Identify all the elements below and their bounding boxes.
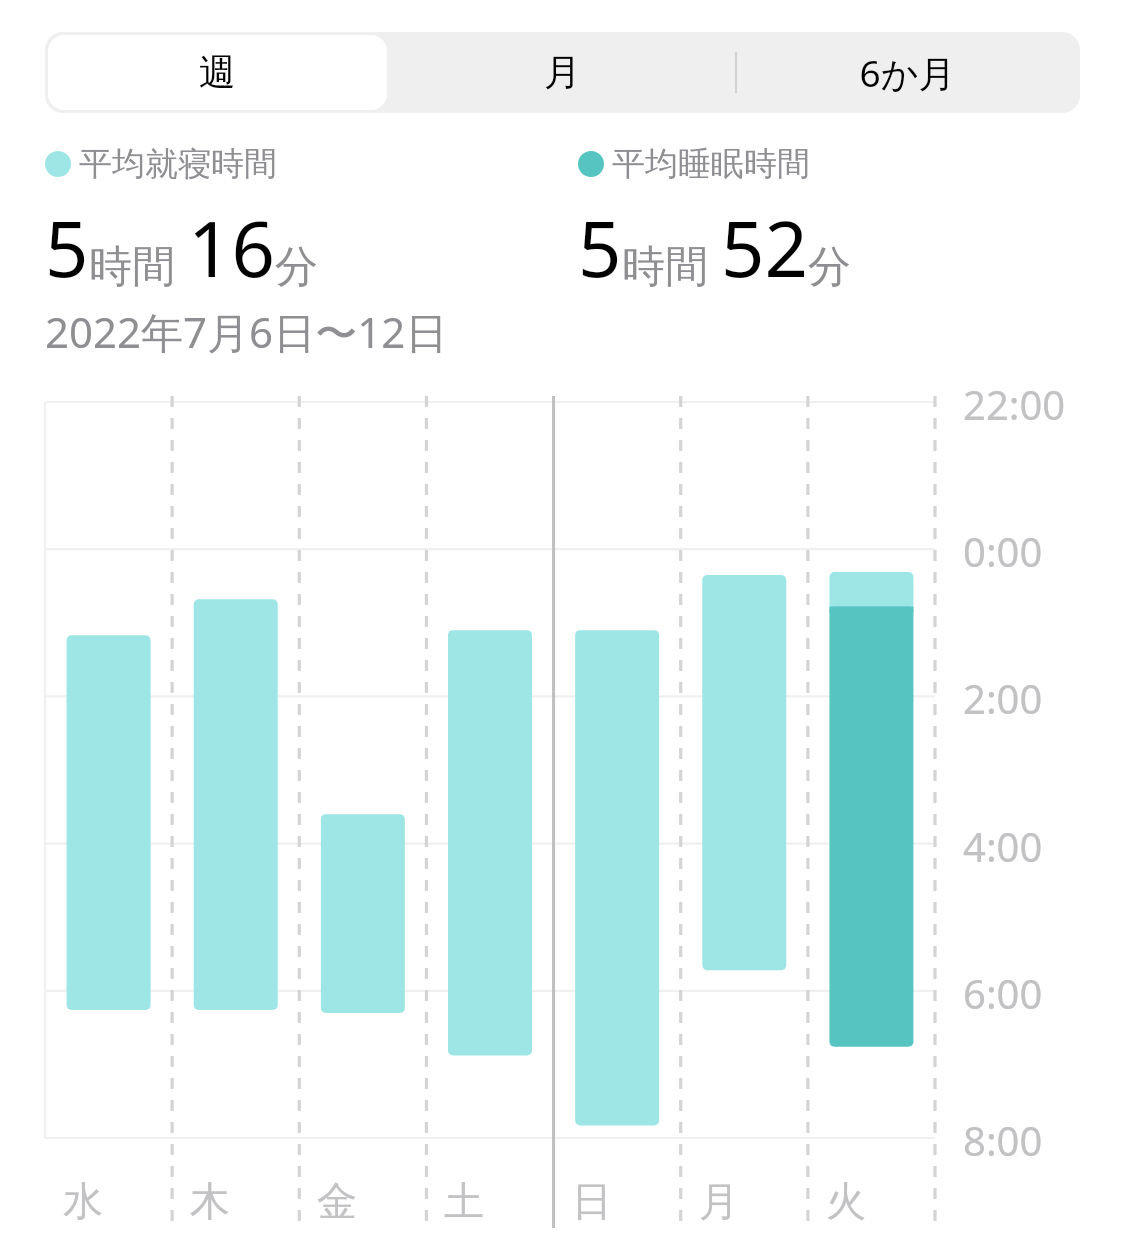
staticText: 平均就寝時間	[79, 143, 277, 185]
button[interactable]: 水曜日の睡眠データ	[45, 402, 172, 1138]
button[interactable]: 日曜日の睡眠データ	[554, 402, 681, 1138]
button[interactable]: 月曜日の睡眠データ	[681, 402, 808, 1138]
staticText: 4:00	[963, 819, 1043, 873]
staticText: 木	[190, 1176, 230, 1226]
staticText: 5	[578, 196, 622, 300]
staticText: 16	[188, 196, 275, 300]
staticText: 6か月	[859, 47, 956, 98]
staticText: 2:00	[963, 671, 1043, 725]
button[interactable]: 土曜日の睡眠データ	[426, 402, 553, 1138]
button[interactable]: 週	[45, 32, 390, 113]
button[interactable]: 火曜日の睡眠データ	[808, 402, 935, 1138]
staticText: 週	[199, 49, 236, 96]
button[interactable]: 金曜日の睡眠データ	[299, 402, 426, 1138]
staticText: 水	[63, 1176, 103, 1226]
staticText: 月	[544, 49, 581, 96]
staticText: 火	[826, 1176, 866, 1226]
staticText: 6:00	[963, 966, 1043, 1020]
staticText: 5	[45, 196, 89, 300]
staticText: 22:00	[963, 377, 1066, 431]
staticText: 52	[721, 196, 808, 300]
button[interactable]: 6か月	[735, 32, 1080, 113]
staticText: 土	[444, 1176, 484, 1226]
staticText: 金	[317, 1176, 357, 1226]
button[interactable]: 木曜日の睡眠データ	[172, 402, 299, 1138]
staticText: 月	[699, 1176, 739, 1226]
staticText: 0:00	[963, 524, 1043, 578]
button[interactable]: 月	[390, 32, 735, 113]
staticText: 平均睡眠時間	[612, 143, 810, 185]
staticText: 分	[808, 240, 851, 294]
staticText: 日	[572, 1176, 612, 1226]
staticText: 2022年7月6日〜12日	[45, 303, 448, 360]
staticText: 時間	[89, 240, 175, 294]
staticText: 8:00	[963, 1113, 1043, 1167]
staticText: 時間	[622, 240, 708, 294]
staticText: 分	[275, 240, 318, 294]
